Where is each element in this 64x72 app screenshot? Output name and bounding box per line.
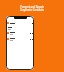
button[interactable] (6, 37, 34, 41)
staticText: Prevent and Repair (20, 5, 44, 8)
button[interactable] (6, 21, 34, 25)
button[interactable] (6, 26, 34, 30)
staticText: Duplicate Contacts (20, 8, 44, 11)
button[interactable] (6, 31, 34, 35)
